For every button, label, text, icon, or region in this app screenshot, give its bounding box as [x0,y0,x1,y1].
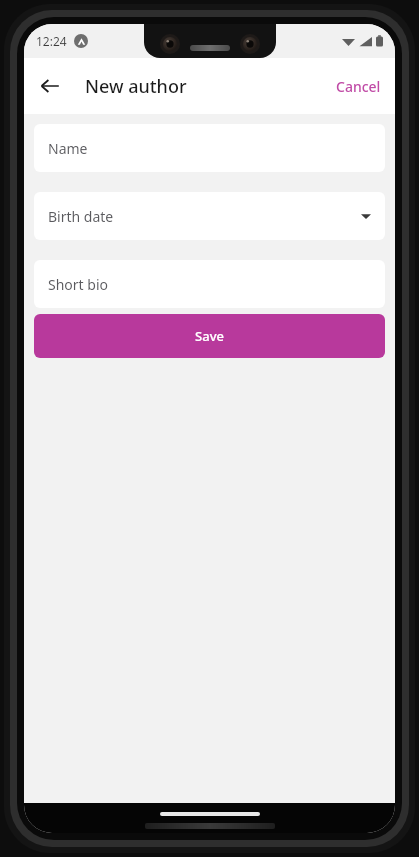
other: Open date picker [361,211,371,221]
button[interactable]: Birth date [34,192,385,240]
staticText: Save [195,327,224,345]
staticText: 12:24 [36,33,67,49]
staticText: Name [48,139,88,158]
button[interactable]: Save [34,314,385,358]
button[interactable]: Name [34,124,385,172]
staticText: Short bio [48,275,108,294]
button[interactable]: Cancel [326,69,391,104]
button[interactable]: Back [30,66,70,106]
staticText: Cancel [336,77,381,96]
button[interactable]: Short bio [34,260,385,308]
staticText: Birth date [48,207,114,226]
staticText: New author [85,74,187,99]
